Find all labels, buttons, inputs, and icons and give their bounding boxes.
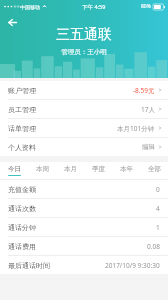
button[interactable]: 最后通话时间: [0, 256, 168, 274]
button[interactable]: 本年: [112, 162, 140, 179]
button[interactable]: 全部: [140, 162, 168, 179]
button[interactable]: 本月: [56, 162, 84, 179]
staticText: 本年: [120, 165, 133, 173]
staticText: 个人资料: [8, 143, 36, 152]
button[interactable]: 账户管理: [0, 81, 168, 100]
button[interactable]: 充值金额: [0, 180, 168, 199]
staticText: 0.08: [147, 242, 160, 251]
staticText: 1: [156, 223, 160, 232]
staticText: 今日: [8, 165, 21, 173]
button[interactable]: 通话费用: [0, 237, 168, 256]
staticText: 季度: [92, 165, 105, 173]
button[interactable]: 话单管理: [0, 119, 168, 138]
staticText: 通话费用: [8, 242, 36, 251]
staticText: 话单管理: [8, 124, 36, 133]
staticText: -8.59元: [133, 86, 155, 95]
staticText: 4: [156, 204, 160, 213]
staticText: 本周: [36, 165, 49, 173]
button[interactable]: 本周: [28, 162, 56, 179]
staticText: 账户管理: [8, 86, 36, 95]
staticText: 全部: [148, 165, 161, 173]
staticText: 员工管理: [8, 105, 36, 114]
staticText: 编辑: [142, 143, 155, 151]
staticText: 最后通话时间: [8, 261, 50, 270]
button[interactable]: 通话分钟: [0, 218, 168, 237]
staticText: 通话次数: [8, 204, 36, 213]
staticText: 中国移动: [20, 4, 40, 10]
staticText: 下午 4:59: [82, 3, 106, 11]
staticText: 2017/10/9 9:30:30: [105, 261, 160, 270]
staticText: 三五通联: [56, 26, 112, 44]
button[interactable]: 季度: [84, 162, 112, 179]
button[interactable]: 员工管理: [0, 100, 168, 119]
button[interactable]: 通话次数: [0, 199, 168, 218]
staticText: 0: [156, 185, 160, 194]
button[interactable]: 个人资料: [0, 138, 168, 156]
staticText: 管理员：王小明: [61, 48, 107, 56]
staticText: 17人: [141, 105, 155, 114]
staticText: 80%: [141, 3, 151, 10]
button[interactable]: Back: [3, 13, 21, 31]
staticText: 本月: [64, 165, 77, 173]
button[interactable]: 今日: [0, 162, 28, 179]
staticText: 通话分钟: [8, 223, 36, 232]
staticText: 充值金额: [8, 185, 36, 194]
staticText: 本月101分钟: [117, 124, 155, 133]
